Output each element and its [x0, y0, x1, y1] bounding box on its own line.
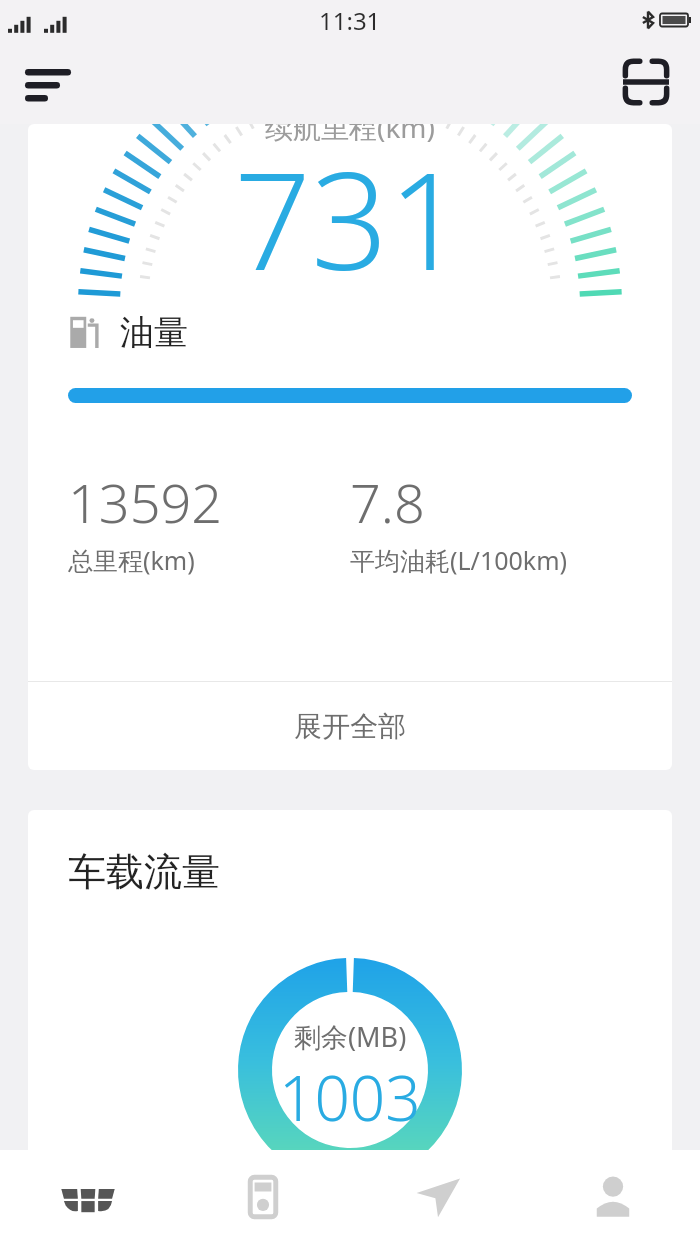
button[interactable]: Profile [525, 1150, 700, 1244]
staticText: 7.8 [350, 465, 425, 539]
staticText: 11:31 [319, 4, 381, 37]
button[interactable]: Vehicle [0, 1150, 175, 1244]
staticText: 展开全部 [294, 709, 406, 744]
staticText: 731 [234, 126, 466, 308]
staticText: 剩余(MB) [294, 1018, 407, 1055]
button[interactable]: Menu [12, 46, 84, 118]
button[interactable]: Device [175, 1150, 350, 1244]
button[interactable]: Scan [610, 46, 682, 118]
staticText: 1003 [279, 1055, 421, 1139]
button[interactable]: Navigation [350, 1150, 525, 1244]
staticText: 总里程(km) [68, 543, 195, 577]
staticText: 车载流量 [68, 848, 220, 896]
staticText: 续航里程(km) [265, 108, 435, 146]
staticText: 平均油耗(L/100km) [350, 543, 568, 577]
button[interactable]: 展开全部 [28, 682, 672, 770]
staticText: 油量 [120, 311, 188, 354]
staticText: 13592 [68, 465, 223, 539]
